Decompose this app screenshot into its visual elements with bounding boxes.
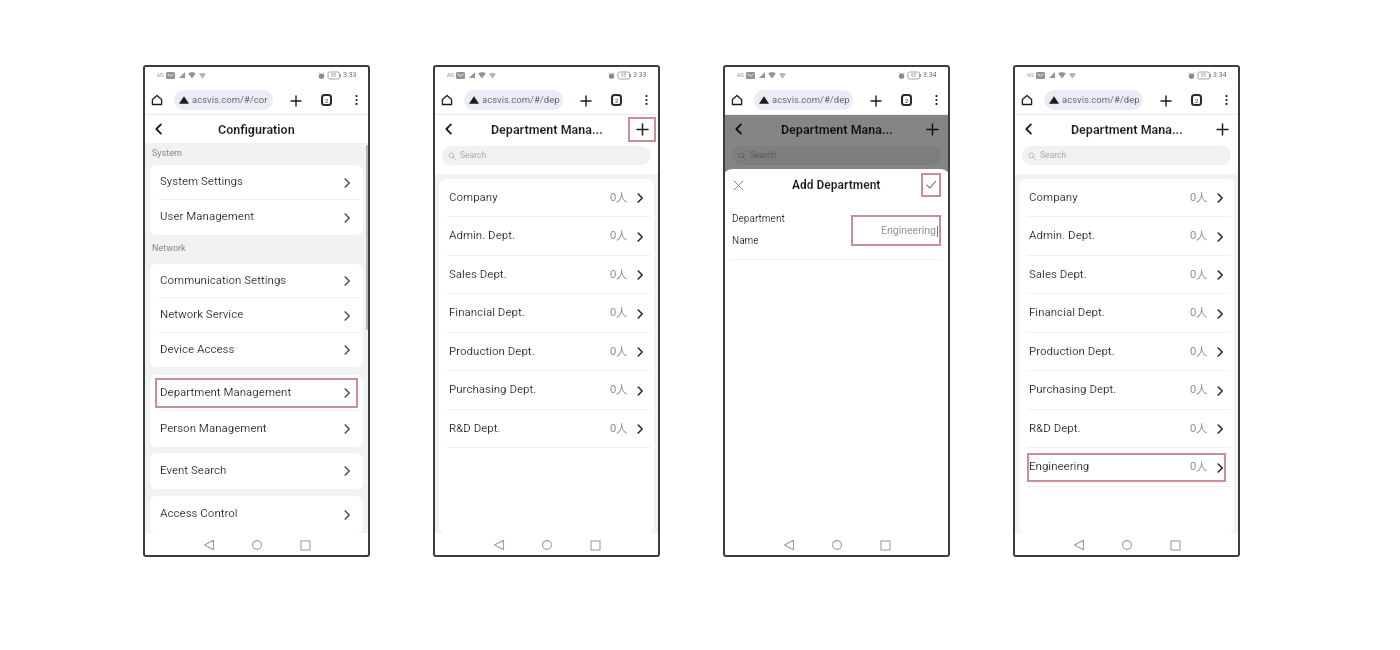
staticText: acsvis.com/#/cor	[192, 94, 268, 105]
button[interactable]: Company	[1019, 179, 1234, 217]
staticText: 2	[325, 97, 329, 104]
staticText: Event Search	[160, 463, 227, 476]
button[interactable]: acsvis.com/#/dep	[1044, 90, 1143, 110]
button[interactable]: Back	[730, 120, 748, 138]
button[interactable]: Back	[1020, 120, 1038, 138]
button[interactable]: Tabs	[1191, 94, 1202, 106]
button[interactable]: Tabs	[901, 94, 912, 106]
button[interactable]: R&D Dept.	[439, 410, 654, 448]
button[interactable]: Back	[776, 533, 802, 557]
staticText: AIS	[1027, 73, 1034, 78]
button[interactable]: Purchasing Dept.	[439, 371, 654, 410]
button[interactable]: More options	[1220, 94, 1232, 106]
button[interactable]: acsvis.com/#/cor	[174, 90, 273, 110]
staticText: R&D Dept.	[1029, 421, 1081, 434]
button[interactable]: Back	[150, 120, 168, 138]
staticText: Production Dept.	[1029, 344, 1115, 357]
button[interactable]: More options	[640, 94, 652, 106]
staticText: 3:34	[1213, 71, 1227, 79]
button[interactable]: acsvis.com/#/dep	[464, 90, 563, 110]
button[interactable]: Access Control	[150, 496, 363, 533]
button[interactable]: Communication Settings	[150, 264, 363, 298]
button[interactable]: Recents	[582, 533, 608, 557]
button[interactable]: Close	[730, 177, 746, 193]
button[interactable]: User Management	[150, 200, 363, 235]
button[interactable]: Sales Dept.	[1019, 256, 1234, 294]
button[interactable]: More options	[930, 94, 942, 106]
button[interactable]: Back	[196, 533, 222, 557]
button[interactable]: Admin. Dept.	[729, 217, 944, 256]
button[interactable]: Confirm	[921, 173, 941, 197]
staticText: 0人	[610, 343, 628, 358]
button[interactable]: Admin. Dept.	[1019, 217, 1234, 256]
staticText: 3:33	[343, 71, 357, 79]
button[interactable]: New tab	[578, 93, 593, 108]
button[interactable]: Add department	[918, 117, 946, 142]
button[interactable]: Sales Dept.	[439, 256, 654, 294]
button[interactable]: Tabs	[611, 94, 622, 106]
staticText: Sales Dept.	[1029, 267, 1087, 280]
button[interactable]: Person Management	[150, 411, 363, 447]
button[interactable]: Device Access	[150, 333, 363, 367]
button[interactable]: Home	[534, 533, 560, 557]
button[interactable]: New tab	[288, 93, 303, 108]
staticText: 95	[911, 73, 917, 78]
button[interactable]: Engineering	[1019, 448, 1234, 487]
staticText: Access Control	[160, 506, 238, 519]
button[interactable]: More options	[350, 94, 362, 106]
button[interactable]: Back	[1066, 533, 1092, 557]
staticText: Department Management	[160, 385, 292, 398]
staticText: Communication Settings	[160, 273, 287, 286]
button[interactable]: New tab	[1158, 93, 1173, 108]
button[interactable]: Production Dept.	[439, 333, 654, 371]
staticText: 0人	[610, 420, 628, 435]
button[interactable]: Home	[1019, 92, 1035, 108]
button[interactable]: Home	[729, 92, 745, 108]
button[interactable]: Home	[244, 533, 270, 557]
button[interactable]: Financial Dept.	[1019, 294, 1234, 333]
button[interactable]: Home	[1114, 533, 1140, 557]
staticText: Network Service	[160, 307, 244, 320]
button[interactable]: Home	[149, 92, 165, 108]
button[interactable]: Company	[439, 179, 654, 217]
button[interactable]: Search	[442, 146, 651, 165]
button[interactable]: Network Service	[150, 298, 363, 333]
button[interactable]: Admin. Dept.	[439, 217, 654, 256]
staticText: 0人	[610, 304, 628, 319]
button[interactable]: Company	[729, 179, 944, 217]
staticText: acsvis.com/#/dep	[1062, 94, 1140, 105]
staticText: 0人	[1190, 420, 1208, 435]
button[interactable]: Home	[824, 533, 850, 557]
button[interactable]: Financial Dept.	[439, 294, 654, 333]
staticText: 0人	[610, 189, 628, 204]
button[interactable]: Add department	[1208, 117, 1236, 142]
button[interactable]: Back	[486, 533, 512, 557]
button[interactable]: Search	[732, 146, 941, 165]
staticText: Admin. Dept.	[739, 228, 806, 241]
button[interactable]: Engineering	[851, 215, 941, 246]
button[interactable]: R&D Dept.	[1019, 410, 1234, 448]
staticText: 0人	[1190, 458, 1208, 473]
button[interactable]: Recents	[292, 533, 318, 557]
button[interactable]: Recents	[1162, 533, 1188, 557]
button[interactable]: Recents	[872, 533, 898, 557]
button[interactable]: Back	[440, 120, 458, 138]
button[interactable]: acsvis.com/#/dep	[754, 90, 853, 110]
button[interactable]: Department Management	[150, 375, 363, 411]
button[interactable]: Tabs	[321, 94, 332, 106]
button[interactable]: Home	[439, 92, 455, 108]
button[interactable]: Purchasing Dept.	[1019, 371, 1234, 410]
button[interactable]: System Settings	[150, 165, 363, 200]
staticText: acsvis.com/#/dep	[772, 94, 850, 105]
button[interactable]: Search	[1022, 146, 1231, 165]
button[interactable]: Production Dept.	[1019, 333, 1234, 371]
button[interactable]: Event Search	[150, 453, 363, 489]
button[interactable]: New tab	[868, 93, 883, 108]
button[interactable]: Add department	[628, 117, 656, 142]
